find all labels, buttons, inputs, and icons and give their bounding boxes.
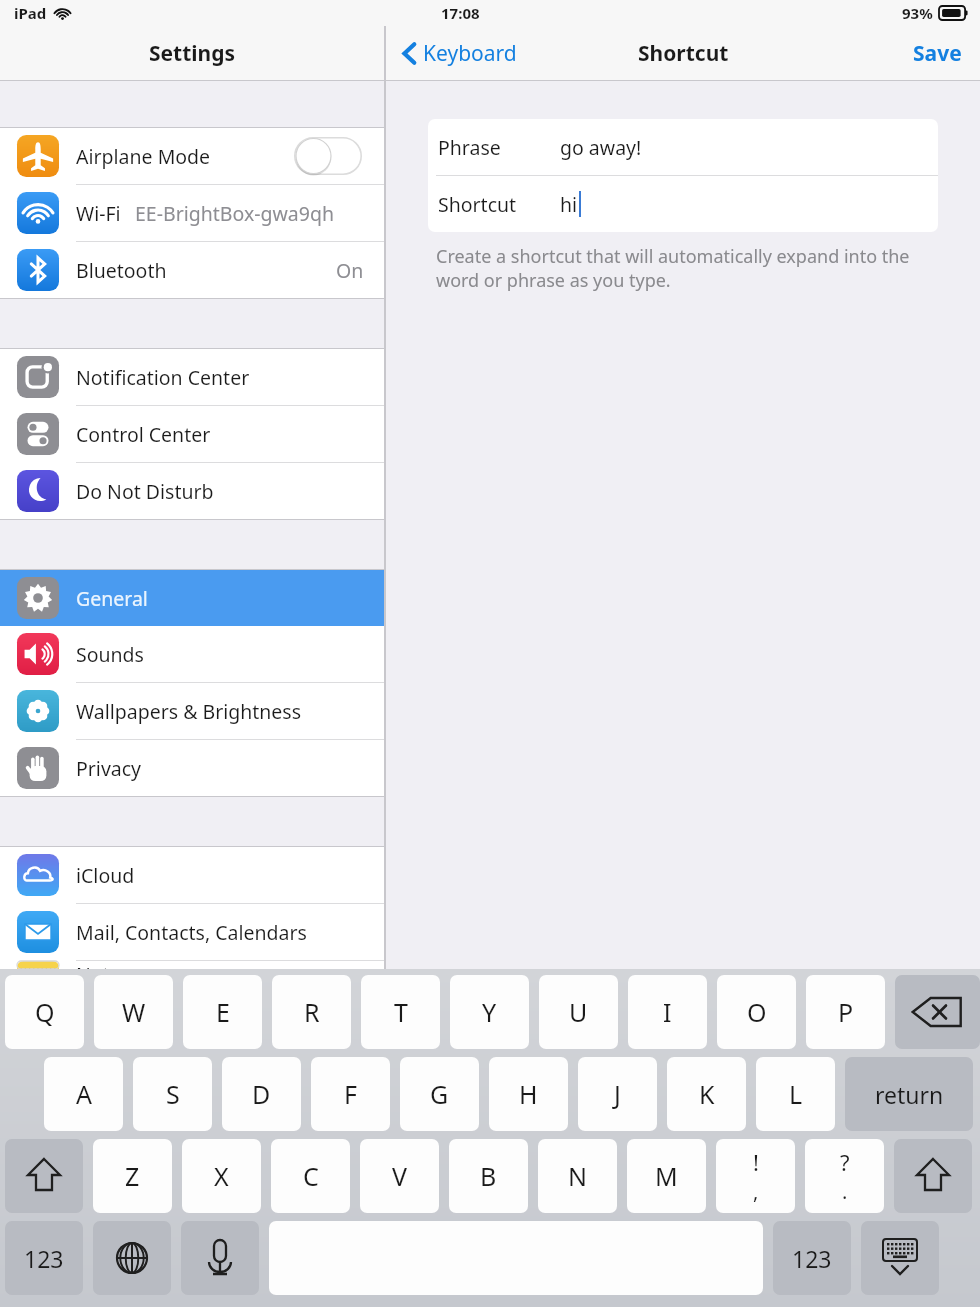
- button[interactable]: Shift: [894, 1139, 972, 1213]
- button[interactable]: Notes: [0, 961, 384, 969]
- button[interactable]: Dictation: [181, 1221, 259, 1295]
- button[interactable]: B: [449, 1139, 528, 1213]
- staticText: C: [303, 1159, 319, 1193]
- button[interactable]: General: [0, 570, 384, 626]
- button[interactable]: Keyboard: [396, 34, 523, 73]
- button[interactable]: Switch keyboard language: [93, 1221, 171, 1295]
- staticText: Notes: [76, 961, 130, 969]
- staticText: G: [430, 1077, 449, 1111]
- staticText: Shortcut: [438, 191, 517, 218]
- staticText: J: [614, 1077, 621, 1111]
- button[interactable]: Notification Center: [0, 349, 384, 405]
- button[interactable]: [294, 137, 362, 175]
- staticText: Shortcut: [638, 39, 729, 68]
- staticText: 123: [24, 1243, 64, 1274]
- staticText: iCloud: [76, 862, 135, 889]
- button[interactable]: Hide keyboard: [861, 1221, 939, 1295]
- staticText: I: [663, 995, 672, 1029]
- button[interactable]: U: [539, 975, 618, 1049]
- button[interactable]: Wallpapers & Brightness: [0, 683, 384, 739]
- button[interactable]: W: [94, 975, 173, 1049]
- button[interactable]: R: [272, 975, 351, 1049]
- staticText: Wallpapers & Brightness: [76, 698, 302, 725]
- button[interactable]: iCloud: [0, 847, 384, 903]
- button[interactable]: 123: [773, 1221, 851, 1295]
- staticText: X: [214, 1159, 229, 1193]
- staticText: Y: [482, 995, 497, 1029]
- staticText: Keyboard: [423, 39, 517, 68]
- button[interactable]: C: [271, 1139, 350, 1213]
- staticText: Mail, Contacts, Calendars: [76, 919, 307, 946]
- button[interactable]: Shift: [5, 1139, 83, 1213]
- staticText: On: [336, 257, 364, 284]
- staticText: N: [568, 1159, 588, 1193]
- staticText: Privacy: [76, 755, 142, 782]
- staticText: V: [392, 1159, 408, 1193]
- staticText: .: [842, 1178, 848, 1205]
- button[interactable]: Y: [450, 975, 529, 1049]
- button[interactable]: P: [806, 975, 885, 1049]
- button[interactable]: Backspace: [895, 975, 980, 1049]
- staticText: Settings: [149, 39, 236, 68]
- staticText: H: [519, 1077, 538, 1111]
- button[interactable]: L: [756, 1057, 835, 1131]
- button[interactable]: Wi-Fi: [0, 185, 384, 241]
- staticText: return: [875, 1079, 944, 1110]
- staticText: E: [216, 995, 230, 1029]
- button[interactable]: J: [578, 1057, 657, 1131]
- button[interactable]: M: [627, 1139, 706, 1213]
- button[interactable]: Mail, Contacts, Calendars: [0, 904, 384, 960]
- staticText: iPad: [14, 3, 47, 23]
- button[interactable]: I: [628, 975, 707, 1049]
- button[interactable]: Sounds: [0, 626, 384, 682]
- button[interactable]: O: [717, 975, 796, 1049]
- button[interactable]: Privacy: [0, 740, 384, 796]
- staticText: go away!: [560, 134, 642, 161]
- button[interactable]: G: [400, 1057, 479, 1131]
- button[interactable]: ?: [805, 1139, 884, 1213]
- staticText: S: [166, 1077, 180, 1111]
- button[interactable]: A: [44, 1057, 123, 1131]
- button[interactable]: Q: [5, 975, 84, 1049]
- staticText: hi: [560, 191, 578, 218]
- staticText: Notification Center: [76, 364, 250, 391]
- button[interactable]: H: [489, 1057, 568, 1131]
- button[interactable]: Airplane Mode: [0, 128, 384, 184]
- staticText: O: [747, 995, 767, 1029]
- staticText: Save: [913, 39, 962, 68]
- button[interactable]: K: [667, 1057, 746, 1131]
- staticText: Q: [35, 995, 55, 1029]
- staticText: K: [699, 1077, 715, 1111]
- button[interactable]: F: [311, 1057, 390, 1131]
- staticText: Phrase: [438, 134, 501, 161]
- button[interactable]: T: [361, 975, 440, 1049]
- button[interactable]: return: [845, 1057, 973, 1131]
- staticText: F: [344, 1077, 357, 1111]
- staticText: D: [252, 1077, 271, 1111]
- button[interactable]: 123: [5, 1221, 83, 1295]
- button[interactable]: Do Not Disturb: [0, 463, 384, 519]
- button[interactable]: Control Center: [0, 406, 384, 462]
- staticText: Z: [125, 1159, 140, 1193]
- button[interactable]: D: [222, 1057, 301, 1131]
- staticText: General: [76, 585, 148, 612]
- staticText: L: [789, 1077, 803, 1111]
- button[interactable]: Shortcut: [428, 176, 938, 232]
- button[interactable]: Save: [905, 34, 970, 73]
- button[interactable]: E: [183, 975, 262, 1049]
- staticText: A: [76, 1077, 92, 1111]
- staticText: ?: [840, 1147, 850, 1177]
- button[interactable]: Bluetooth: [0, 242, 384, 298]
- staticText: M: [655, 1159, 678, 1193]
- button[interactable]: V: [360, 1139, 439, 1213]
- button[interactable]: N: [538, 1139, 617, 1213]
- button[interactable]: Z: [93, 1139, 172, 1213]
- button[interactable]: !: [716, 1139, 795, 1213]
- button[interactable]: Phrase: [428, 119, 938, 175]
- button[interactable]: X: [182, 1139, 261, 1213]
- staticText: 17:08: [441, 3, 480, 23]
- button[interactable]: S: [133, 1057, 212, 1131]
- staticText: U: [569, 995, 588, 1029]
- staticText: Airplane Mode: [76, 143, 211, 170]
